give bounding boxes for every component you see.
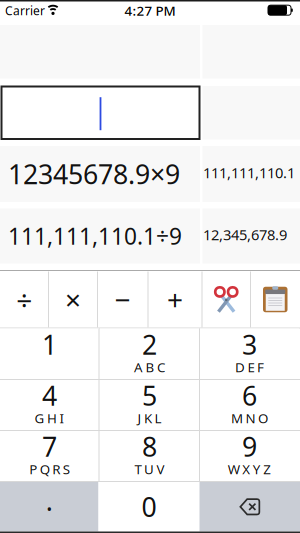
staticText: C <box>157 358 165 376</box>
staticText: J <box>137 409 141 427</box>
staticText: 12345678.9×9 <box>8 156 180 192</box>
button[interactable]: Delete <box>199 482 300 531</box>
button[interactable]: × <box>48 271 97 328</box>
button[interactable]: . <box>0 482 98 531</box>
button[interactable]: 9 <box>200 430 299 481</box>
button[interactable]: 3 <box>200 328 299 379</box>
button[interactable]: 111,111,110.1÷9 <box>0 208 200 263</box>
button[interactable]: 4 <box>0 379 99 430</box>
staticText: Carrier <box>5 2 45 18</box>
staticText: . <box>46 483 53 518</box>
button[interactable]: 111,111,110.1 <box>202 146 300 202</box>
staticText: ÷ <box>16 281 32 318</box>
button[interactable]: Cut <box>202 271 250 328</box>
staticText: B <box>145 358 154 376</box>
staticText: M <box>231 409 243 427</box>
staticText: E <box>247 358 254 376</box>
staticText: 8 <box>142 429 157 464</box>
staticText: P <box>29 460 37 478</box>
staticText: T <box>134 460 141 478</box>
staticText: 3 <box>242 327 257 362</box>
button[interactable]: 8 <box>100 430 199 481</box>
staticText: 1 <box>42 327 57 362</box>
button[interactable]: 7 <box>0 430 99 481</box>
staticText: 4:27 PM <box>124 2 175 19</box>
button[interactable]: − <box>97 271 148 328</box>
staticText: I <box>59 409 64 427</box>
staticText: O <box>258 409 268 427</box>
staticText: − <box>115 281 131 318</box>
staticText: S <box>63 460 70 478</box>
staticText: Y <box>253 460 261 478</box>
staticText: G <box>34 409 44 427</box>
staticText: N <box>245 409 255 427</box>
staticText: F <box>257 358 264 376</box>
staticText: H <box>47 409 57 427</box>
button[interactable]: + <box>148 271 202 328</box>
staticText: Z <box>263 460 271 478</box>
staticText: Q <box>40 460 50 478</box>
button[interactable]: 1 <box>0 328 99 379</box>
button[interactable]: Paste <box>250 271 300 328</box>
button[interactable]: 2 <box>100 328 199 379</box>
staticText: 7 <box>42 429 57 464</box>
staticText: × <box>65 281 81 318</box>
staticText: 111,111,110.1÷9 <box>8 221 182 251</box>
staticText: A <box>134 358 143 376</box>
button[interactable]: Formula input <box>1 86 199 139</box>
button[interactable]: 0 <box>98 482 199 531</box>
button[interactable]: 6 <box>200 379 299 430</box>
staticText: 111,111,110.1 <box>203 163 295 182</box>
staticText: L <box>154 409 161 427</box>
staticText: 5 <box>142 378 157 413</box>
button[interactable]: 5 <box>100 379 199 430</box>
staticText: 9 <box>242 429 257 464</box>
button[interactable]: ÷ <box>0 271 48 328</box>
staticText: D <box>235 358 245 376</box>
staticText: V <box>156 460 164 478</box>
staticText: W <box>228 460 240 478</box>
button[interactable]: 12,345,678.9 <box>202 208 300 263</box>
staticText: R <box>52 460 60 478</box>
button[interactable]: 12345678.9×9 <box>0 146 200 202</box>
staticText: U <box>144 460 154 478</box>
staticText: 4 <box>42 378 57 413</box>
staticText: + <box>167 281 183 318</box>
staticText: 0 <box>141 489 156 524</box>
staticText: 2 <box>142 327 157 362</box>
staticText: 12,345,678.9 <box>203 225 287 244</box>
staticText: K <box>144 409 152 427</box>
staticText: 6 <box>242 378 257 413</box>
staticText: X <box>242 460 250 478</box>
